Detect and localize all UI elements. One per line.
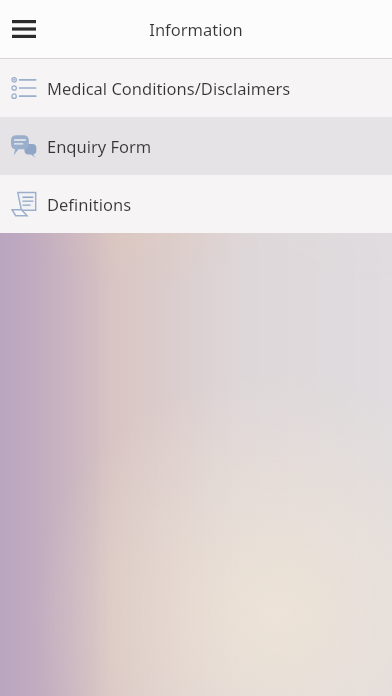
button[interactable]: Definitions <box>0 175 392 233</box>
staticText: Medical Conditions/Disclaimers <box>47 77 291 99</box>
staticText: Enquiry Form <box>47 135 152 157</box>
button[interactable]: Open navigation menu <box>2 7 46 51</box>
button[interactable]: Enquiry Form <box>0 117 392 175</box>
staticText: Definitions <box>47 193 132 215</box>
staticText: Information <box>149 18 243 40</box>
button[interactable]: Medical Conditions/Disclaimers <box>0 59 392 117</box>
